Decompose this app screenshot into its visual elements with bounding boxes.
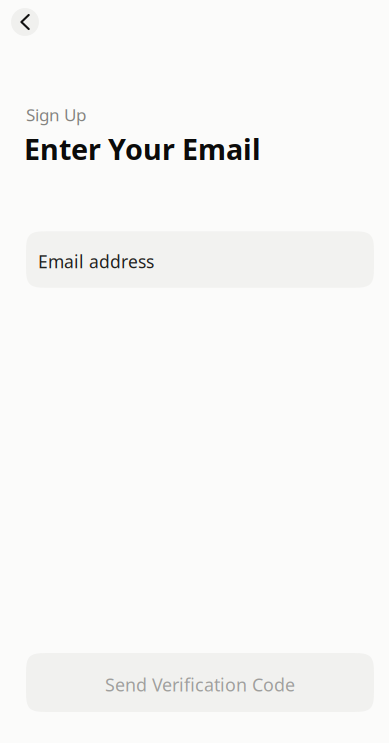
button[interactable]: Email address: [26, 231, 374, 288]
button[interactable]: Back: [11, 8, 39, 36]
staticText: Send Verification Code: [105, 672, 295, 697]
staticText: Email address: [38, 250, 154, 273]
staticText: Enter Your Email: [24, 129, 261, 168]
staticText: Sign Up: [26, 103, 86, 126]
button[interactable]: Send Verification Code: [26, 653, 374, 712]
